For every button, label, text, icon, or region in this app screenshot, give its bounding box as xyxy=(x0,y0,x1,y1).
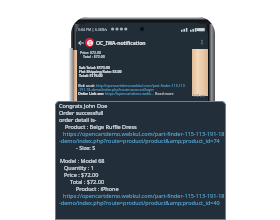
staticText: Flat Shipping Rate: $3.00 xyxy=(79,69,122,74)
staticText: Congrats John Doe xyxy=(59,102,108,109)
staticText: -demo/index.php?route=product/product&am… xyxy=(59,137,220,144)
staticText: -191-18-demo/index.php?route=account/log… xyxy=(78,87,154,92)
staticText: Sub Total: $173.00 xyxy=(79,65,110,70)
staticText: https://opencartdemo.webkul.com/part-fin… xyxy=(63,130,225,137)
staticText: http://opencartdemo.webkul.com/part-find… xyxy=(96,83,185,88)
staticText: Product : iPhone xyxy=(76,185,119,192)
button[interactable]: Back xyxy=(77,39,84,46)
button[interactable]: Congrats John Doe xyxy=(55,101,226,220)
staticText: OC_IWA-notification xyxy=(96,39,146,46)
staticText: Price : $72.00 xyxy=(64,171,99,178)
staticText: Visit us at: xyxy=(78,83,96,88)
staticText: order detail is- xyxy=(59,116,97,123)
staticText: 5:04 pm xyxy=(193,94,206,98)
staticText: Total: $176.00 xyxy=(79,73,103,78)
staticText: Order successfull xyxy=(59,109,104,116)
staticText: Total : $72.00 xyxy=(70,178,105,185)
staticText: Order Link are: xyxy=(78,91,105,96)
staticText: https://opencartdemo.webk... xyxy=(105,91,154,96)
staticText: Model : Model 68 xyxy=(60,157,105,164)
button[interactable]: More options xyxy=(198,38,206,46)
staticText: -demo/index.php?route=product/product&am… xyxy=(59,199,220,206)
staticText: Read more xyxy=(154,91,174,96)
staticText: Quantity : 1 xyxy=(64,164,94,171)
staticText: https://opencartdemo.webkul.com/part-fin… xyxy=(63,192,225,199)
staticText: Total : $72.00 xyxy=(83,54,105,59)
staticText: Product : Beige Ruffle Dress xyxy=(65,123,137,130)
staticText: 5:04 PM | 6.3KB/s xyxy=(78,27,108,32)
staticText: - Size: S xyxy=(76,144,96,151)
staticText: Price: $72.00 xyxy=(80,50,101,55)
